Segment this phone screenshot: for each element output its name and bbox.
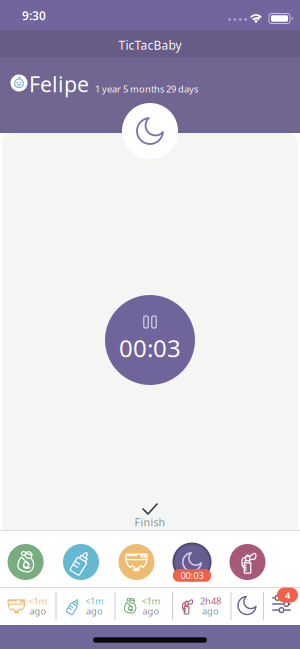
button[interactable]: Diaper change [118,544,154,580]
button[interactable]: Bottle feeding [63,544,99,580]
staticText: Finish [134,515,165,529]
staticText: 00:03 [180,569,203,582]
staticText: <1m [28,595,47,607]
button[interactable]: Pumping history [172,587,231,624]
staticText: 9:30 [22,7,46,23]
staticText: 00:03 [119,332,181,364]
staticText: <1m [141,595,160,607]
button[interactable]: Finish [120,501,180,531]
staticText: 2h48 [200,595,221,607]
button[interactable]: Pumping [229,544,265,580]
staticText: <1m [85,595,104,607]
button[interactable]: Felipe [5,63,215,103]
button[interactable]: Sleep [173,543,210,580]
button[interactable]: Sleep history [231,587,263,624]
button[interactable]: Pause sleep timer [105,295,195,385]
staticText: ago [202,605,219,617]
staticText: ago [86,605,103,617]
staticText: ago [142,605,159,617]
staticText: ago [29,605,46,617]
staticText: Felipe [29,70,89,98]
button[interactable]: Filters [263,583,299,623]
button[interactable]: Diaper history [0,587,56,624]
button[interactable]: Bottle history [56,587,115,624]
button[interactable]: Nursing history [115,587,172,624]
staticText: TicTacBaby [118,37,181,53]
button[interactable]: Nursing [8,544,44,580]
staticText: 4 [285,589,290,601]
staticText: 1 year 5 months 29 days [95,83,198,95]
